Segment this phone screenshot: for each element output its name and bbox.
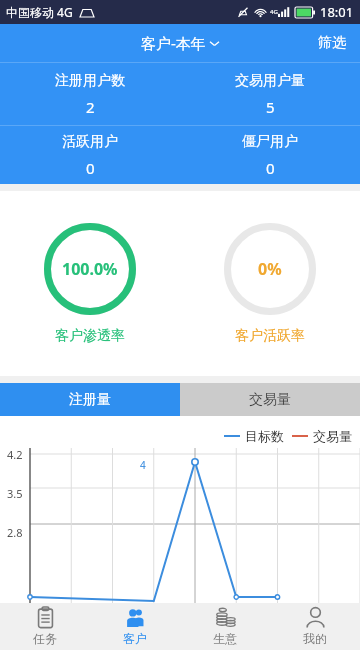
button[interactable]: 活跃用户 [0,126,180,184]
staticText: 5 [266,97,275,117]
staticText: 目标数 [245,428,284,444]
button[interactable]: 交易用户量 [180,63,360,125]
button[interactable]: 我的 [270,603,360,650]
staticText: 2 [86,97,95,117]
button[interactable]: 筛选 [304,26,360,60]
staticText: 客户活跃率 [235,327,305,345]
button[interactable]: 客户 [90,603,180,650]
staticText: 客户渗透率 [55,327,125,345]
button[interactable]: 客户-本年 [141,33,219,53]
staticText: 中国移动 4G [6,4,73,20]
button[interactable]: 100.0% [0,191,180,376]
staticText: 18:01 [320,3,354,21]
button[interactable]: 任务 [0,603,90,650]
staticText: 筛选 [318,34,346,52]
button[interactable]: 0% [180,191,360,376]
staticText: 我的 [303,631,327,646]
staticText: 客户 [123,631,147,646]
staticText: 100.0% [62,258,118,280]
button[interactable]: 生意 [180,603,270,650]
staticText: 0 [86,158,95,178]
button[interactable]: 注册用户数 [0,63,180,125]
staticText: 客户-本年 [141,33,206,53]
staticText: 0 [266,158,275,178]
staticText: 0% [258,258,282,280]
staticText: 注册量 [69,391,111,409]
button[interactable]: 僵尸用户 [180,126,360,184]
staticText: 3.5 [7,486,23,501]
staticText: 交易量 [313,428,352,444]
staticText: 注册用户数 [55,72,125,90]
button[interactable]: 交易量 [180,383,360,416]
staticText: 任务 [33,631,57,646]
staticText: 交易用户量 [235,72,305,90]
button[interactable]: 注册量 [0,383,180,416]
staticText: 僵尸用户 [242,133,298,151]
staticText: 4.2 [7,447,23,462]
staticText: 2.8 [7,525,23,540]
staticText: 生意 [213,631,237,646]
staticText: 活跃用户 [62,133,118,151]
staticText: 交易量 [249,391,291,409]
staticText: 4 [140,458,146,472]
staticText: 4G [270,8,278,16]
